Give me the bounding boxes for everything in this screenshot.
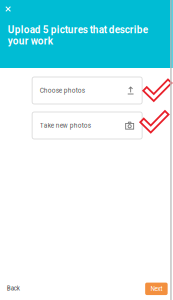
staticText: Take new photos [40, 122, 91, 129]
staticText: your work [8, 35, 53, 47]
button[interactable]: Take new photos [32, 112, 142, 139]
button[interactable]: Next [145, 283, 168, 295]
staticText: Choose photos [40, 87, 85, 94]
button[interactable]: Back [0, 281, 27, 297]
staticText: Upload 5 pictures that describe [8, 24, 148, 36]
staticText: Next [150, 285, 162, 292]
staticText: Back [7, 285, 20, 292]
button[interactable]: Choose photos [32, 77, 142, 104]
button[interactable]: Close [0, 0, 14, 14]
